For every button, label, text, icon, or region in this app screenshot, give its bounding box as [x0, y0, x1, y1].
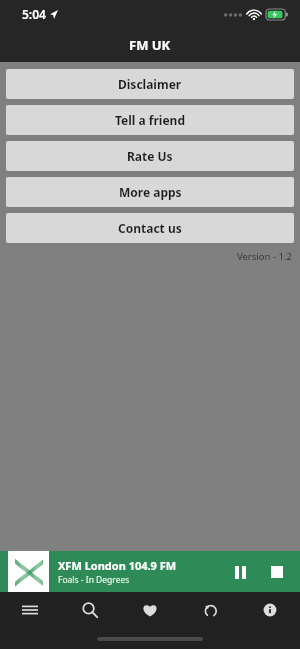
staticText: More apps	[119, 184, 182, 200]
button[interactable]: Pause	[223, 555, 257, 589]
button[interactable]: Search	[60, 592, 120, 628]
staticText: Tell a friend	[115, 112, 185, 128]
staticText: Version - 1.2	[237, 250, 292, 263]
button[interactable]: Contact us	[6, 213, 294, 243]
button[interactable]	[8, 551, 49, 592]
button[interactable]: Favourites	[120, 592, 180, 628]
staticText: Foals - In Degrees	[58, 574, 130, 586]
button[interactable]: Menu	[0, 592, 60, 628]
staticText: Rate Us	[127, 148, 173, 164]
button[interactable]: History	[180, 592, 240, 628]
staticText: Contact us	[118, 220, 182, 236]
button[interactable]: Stop	[260, 555, 294, 589]
button[interactable]: Tell a friend	[6, 105, 294, 135]
button[interactable]: More apps	[6, 177, 294, 207]
staticText: Disclaimer	[118, 76, 182, 92]
button[interactable]: Info	[240, 592, 300, 628]
button[interactable]: Rate Us	[6, 141, 294, 171]
staticText: 5:04	[22, 6, 46, 22]
button[interactable]: Disclaimer	[6, 69, 294, 99]
staticText: FM UK	[129, 36, 171, 54]
staticText: XFM London 104.9 FM	[58, 558, 177, 573]
